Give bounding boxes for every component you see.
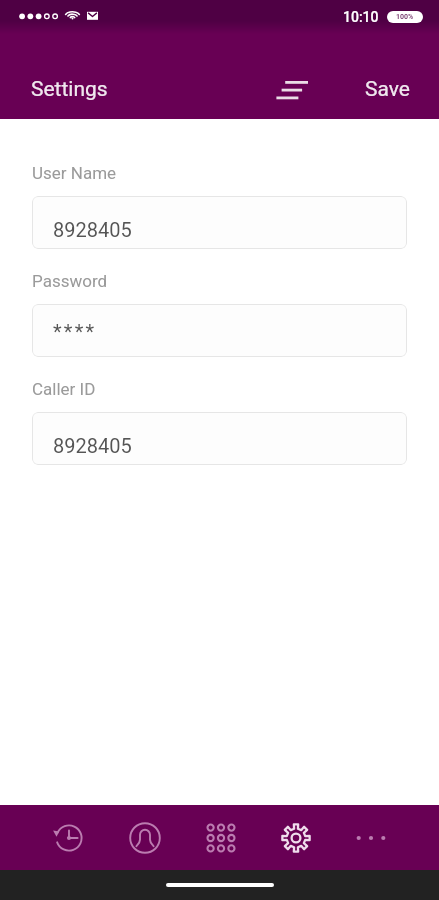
staticText: User Name: [32, 163, 117, 183]
button[interactable]: Settings: [258, 805, 333, 870]
button[interactable]: ****: [32, 304, 407, 357]
button[interactable]: Recents: [31, 805, 107, 870]
staticText: Password: [32, 271, 108, 291]
button[interactable]: Save: [364, 77, 411, 102]
button[interactable]: Contacts: [107, 805, 183, 870]
staticText: ****: [53, 320, 97, 343]
staticText: 8928405: [53, 434, 132, 457]
button[interactable]: Keypad: [183, 805, 258, 870]
staticText: 8928405: [53, 218, 132, 241]
staticText: 10:10: [343, 9, 379, 25]
staticText: Caller ID: [32, 379, 96, 399]
button[interactable]: Settings: [30, 77, 109, 102]
button[interactable]: More: [333, 805, 408, 870]
staticText: Settings: [31, 77, 108, 102]
staticText: Save: [365, 77, 410, 102]
button[interactable]: 8928405: [32, 196, 407, 249]
button[interactable]: 8928405: [32, 412, 407, 465]
button[interactable]: Sort: [270, 71, 314, 109]
staticText: 100%: [396, 13, 414, 21]
